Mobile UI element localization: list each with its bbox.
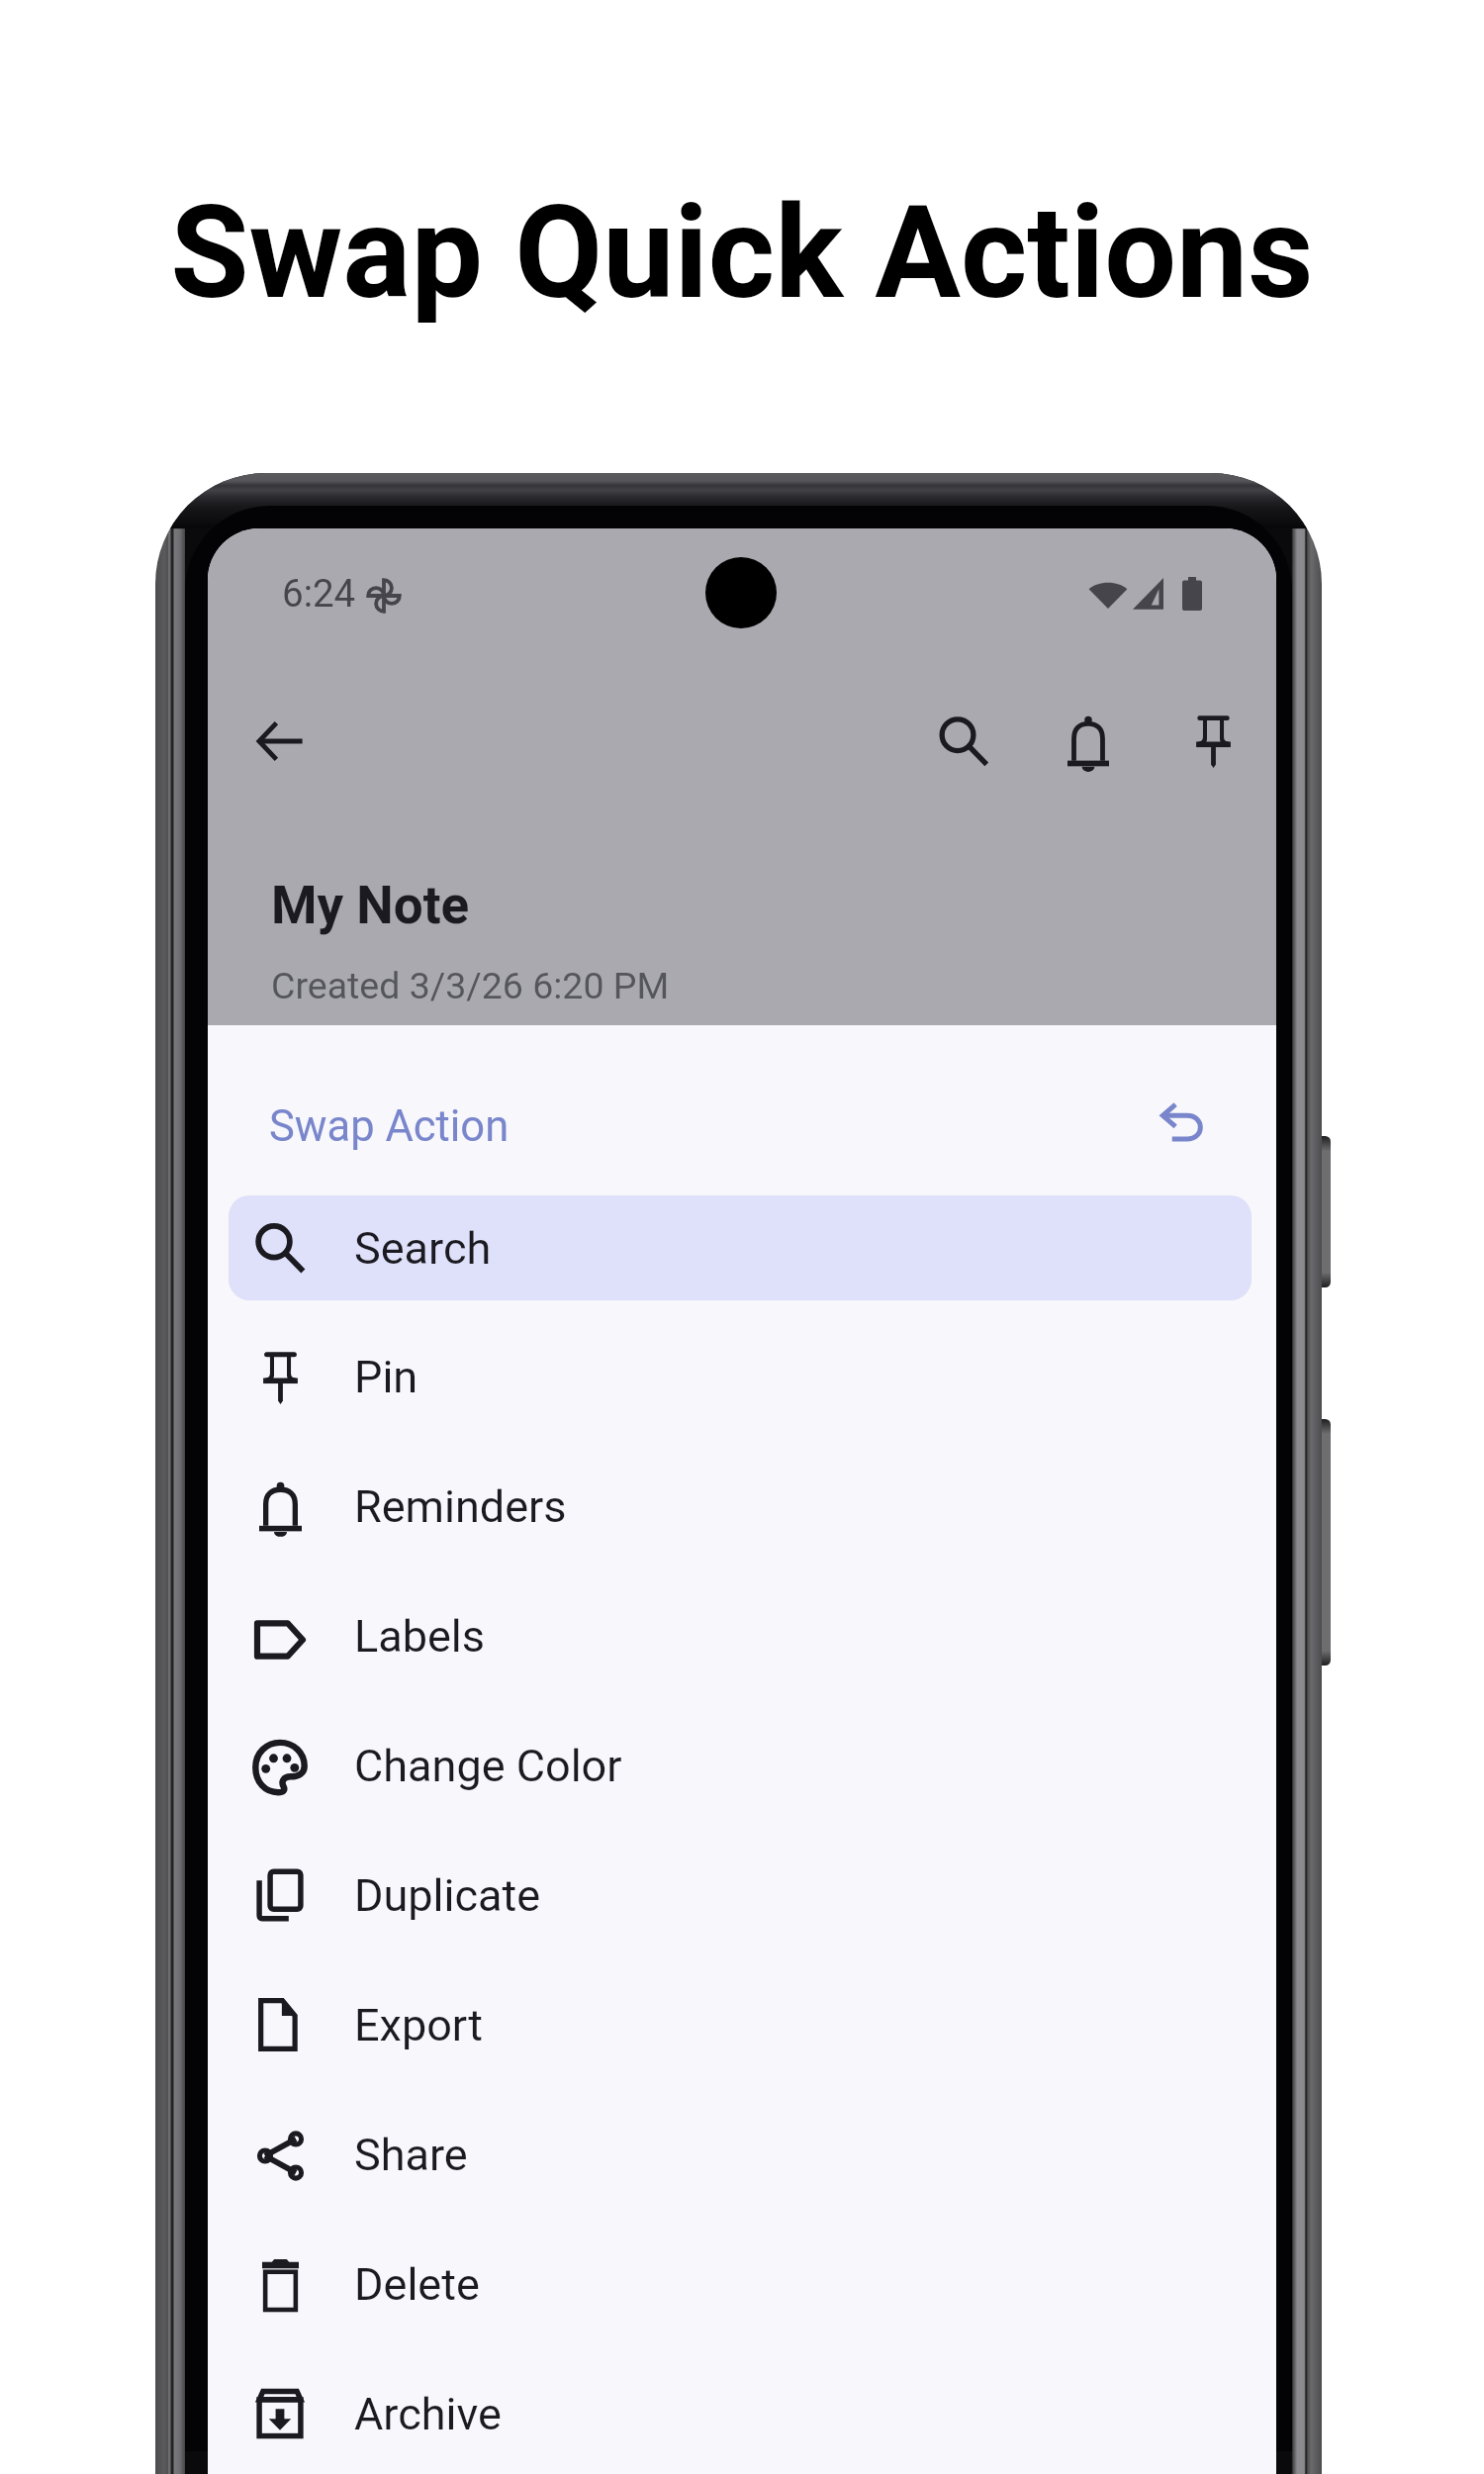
staticText: Created 3/3/26 6:20 PM	[271, 964, 670, 1007]
staticText: Reminders	[354, 1480, 567, 1533]
button[interactable]: Export	[229, 1972, 1252, 2077]
button[interactable]: Undo	[1129, 1070, 1236, 1177]
staticText: Labels	[354, 1610, 486, 1663]
staticText: Search	[354, 1222, 492, 1275]
button[interactable]: Reminders	[1029, 682, 1148, 801]
button[interactable]: Archive	[229, 2361, 1252, 2466]
button[interactable]: Duplicate	[229, 1843, 1252, 1948]
button[interactable]: Delete	[229, 2232, 1252, 2336]
staticText: 6:24	[282, 571, 356, 616]
button[interactable]: Change Color	[229, 1713, 1252, 1818]
button[interactable]: Pin	[1154, 682, 1272, 801]
staticText: Swap Action	[269, 1101, 510, 1152]
staticText: Change Color	[354, 1740, 622, 1792]
button[interactable]: Share	[229, 2102, 1252, 2207]
staticText: Export	[354, 1999, 483, 2051]
staticText: Swap Quick Actions	[0, 178, 1484, 328]
staticText: Delete	[354, 2258, 480, 2311]
button[interactable]: Search	[904, 682, 1023, 801]
button[interactable]: Pin	[229, 1324, 1252, 1429]
button[interactable]: Reminders	[229, 1454, 1252, 1559]
button[interactable]: Search	[229, 1195, 1252, 1300]
button[interactable]: Back	[228, 688, 334, 795]
button[interactable]: Labels	[229, 1583, 1252, 1688]
staticText: Share	[354, 2129, 468, 2181]
staticText: Archive	[354, 2388, 502, 2440]
staticText: My Note	[271, 875, 470, 936]
staticText: Pin	[354, 1351, 418, 1403]
staticText: Duplicate	[354, 1869, 541, 1922]
